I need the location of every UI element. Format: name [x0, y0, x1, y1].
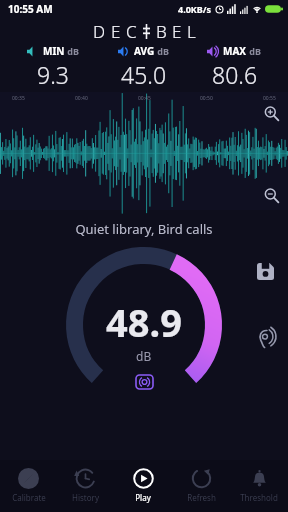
- staticText: 9.3: [37, 59, 69, 90]
- button[interactable]: Zoom out: [262, 186, 280, 204]
- staticText: E: [172, 20, 182, 43]
- staticText: Threshold: [240, 492, 278, 503]
- button[interactable]: Microphone source: [136, 375, 153, 389]
- staticText: dB: [155, 45, 170, 57]
- staticText: dB: [247, 45, 262, 57]
- staticText: Calibrate: [12, 492, 46, 503]
- button[interactable]: Save: [254, 260, 276, 282]
- staticText: C: [126, 20, 137, 43]
- staticText: 80.6: [212, 59, 258, 90]
- staticText: Quiet library, Bird calls: [0, 220, 288, 238]
- staticText: dB: [65, 45, 80, 57]
- button[interactable]: Threshold: [230, 460, 288, 512]
- staticText: 45.0: [121, 59, 167, 90]
- staticText: 48.9: [106, 296, 182, 348]
- staticText: dB: [136, 348, 152, 364]
- staticText: 00:35: [12, 95, 25, 102]
- staticText: L: [187, 20, 196, 43]
- staticText: E: [111, 20, 121, 43]
- staticText: MIN: [43, 44, 65, 58]
- staticText: 00:50: [200, 95, 213, 102]
- staticText: MAX: [223, 44, 247, 58]
- staticText: 00:55: [263, 95, 276, 102]
- staticText: 00:45: [138, 95, 151, 102]
- staticText: History: [72, 492, 99, 503]
- staticText: Play: [135, 492, 151, 503]
- button[interactable]: History: [57, 460, 114, 512]
- button[interactable]: Zoom in: [262, 104, 280, 122]
- staticText: D: [93, 20, 106, 43]
- button[interactable]: Refresh: [172, 460, 230, 512]
- staticText: Refresh: [187, 492, 216, 503]
- staticText: AVG: [134, 44, 155, 58]
- button[interactable]: Play: [114, 460, 172, 512]
- staticText: 10:55 AM: [8, 2, 53, 16]
- staticText: B: [156, 20, 167, 43]
- button[interactable]: Calibrate: [0, 460, 57, 512]
- button[interactable]: Hearing: [254, 326, 278, 350]
- staticText: 00:40: [75, 95, 88, 102]
- staticText: 4.0KB/s: [178, 3, 212, 15]
